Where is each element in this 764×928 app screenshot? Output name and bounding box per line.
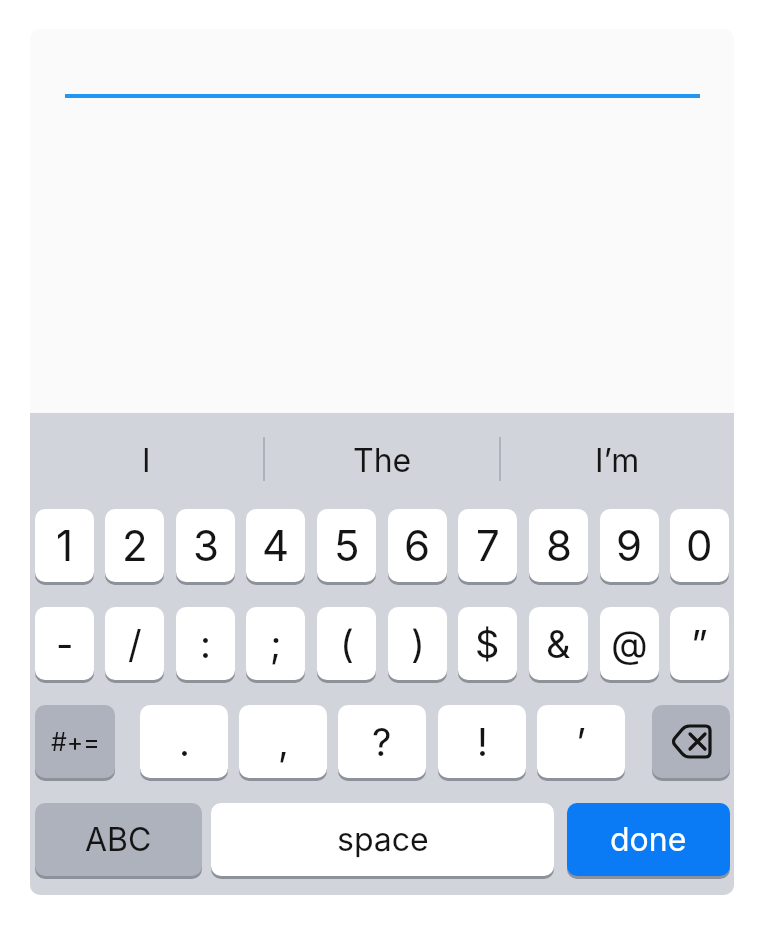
button[interactable]: [652, 705, 730, 778]
button[interactable]: .: [140, 705, 228, 778]
button[interactable]: ;: [246, 607, 305, 680]
staticText: -: [56, 621, 74, 667]
staticText: ABC: [85, 820, 152, 859]
button[interactable]: 0: [670, 509, 729, 582]
button[interactable]: 7: [458, 509, 517, 582]
staticText: done: [610, 820, 687, 859]
staticText: $: [475, 621, 500, 667]
staticText: ,: [278, 719, 289, 765]
button[interactable]: :: [176, 607, 235, 680]
button[interactable]: &: [529, 607, 588, 680]
button[interactable]: ,: [239, 705, 327, 778]
button[interactable]: 5: [317, 509, 376, 582]
button[interactable]: The: [265, 413, 499, 508]
staticText: !: [477, 719, 488, 765]
button[interactable]: 4: [246, 509, 305, 582]
staticText: 6: [404, 520, 431, 571]
button[interactable]: 1: [35, 509, 94, 582]
staticText: ”: [691, 621, 708, 667]
staticText: space: [337, 820, 429, 859]
staticText: 5: [334, 520, 360, 571]
staticText: 8: [546, 520, 572, 571]
staticText: The: [353, 441, 412, 480]
staticText: &: [546, 621, 571, 667]
button[interactable]: 3: [176, 509, 235, 582]
button[interactable]: ): [388, 607, 447, 680]
button[interactable]: ”: [670, 607, 729, 680]
button[interactable]: -: [35, 607, 94, 680]
staticText: 4: [262, 520, 290, 571]
staticText: ): [411, 621, 425, 667]
staticText: I’m: [595, 441, 640, 480]
staticText: ?: [372, 719, 392, 765]
staticText: 9: [616, 520, 643, 571]
button[interactable]: 2: [105, 509, 164, 582]
staticText: 1: [56, 520, 74, 571]
button[interactable]: (: [317, 607, 376, 680]
button[interactable]: !: [438, 705, 526, 778]
button[interactable]: 9: [600, 509, 659, 582]
button[interactable]: space: [211, 803, 554, 876]
button[interactable]: #+=: [35, 705, 115, 778]
button[interactable]: ’: [537, 705, 625, 778]
button[interactable]: 6: [388, 509, 447, 582]
staticText: :: [200, 621, 211, 667]
staticText: #+=: [51, 727, 100, 757]
staticText: 2: [122, 520, 148, 571]
staticText: @: [611, 621, 648, 667]
staticText: 7: [476, 520, 500, 571]
button[interactable]: I: [30, 413, 263, 508]
staticText: ;: [270, 621, 282, 667]
button[interactable]: 8: [529, 509, 588, 582]
button[interactable]: /: [105, 607, 164, 680]
staticText: I: [142, 441, 151, 480]
staticText: 3: [193, 520, 219, 571]
button[interactable]: ?: [338, 705, 426, 778]
button[interactable]: $: [458, 607, 517, 680]
button[interactable]: ABC: [35, 803, 202, 876]
button[interactable]: done: [567, 803, 730, 876]
button[interactable]: @: [600, 607, 659, 680]
staticText: /: [128, 621, 142, 667]
button[interactable]: I’m: [501, 413, 734, 508]
staticText: 0: [686, 520, 713, 571]
staticText: ’: [576, 719, 586, 765]
staticText: (: [340, 621, 354, 667]
staticText: .: [179, 719, 190, 765]
